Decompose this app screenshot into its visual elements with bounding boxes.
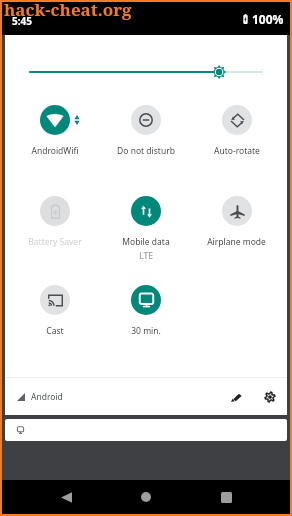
button[interactable]: Do not disturb <box>100 105 191 157</box>
button[interactable]: Recents <box>186 480 266 514</box>
staticText: Do not disturb <box>117 145 175 157</box>
staticText: Android <box>31 391 63 403</box>
button[interactable]: Home <box>106 480 186 514</box>
staticText: AndroidWifi <box>31 145 79 157</box>
button[interactable]: Back <box>26 480 106 514</box>
staticText: 30 min. <box>131 325 161 337</box>
staticText: 100% <box>252 11 284 27</box>
button[interactable]: Battery Saver <box>9 196 100 248</box>
button[interactable]: Edit <box>222 383 250 411</box>
button[interactable]: AndroidWifi <box>9 105 100 157</box>
staticText: Battery Saver <box>28 236 82 248</box>
button[interactable]: Auto-rotate <box>191 105 282 157</box>
staticText: Auto-rotate <box>214 145 260 157</box>
staticText: Cast <box>46 325 64 337</box>
button[interactable]: Cast <box>9 285 100 337</box>
staticText: LTE <box>139 250 153 262</box>
button[interactable]: Settings <box>256 383 284 411</box>
button[interactable]: Mobile data <box>100 196 191 262</box>
staticText: 5:45 <box>12 14 32 28</box>
button[interactable]: 30 min. <box>100 285 191 337</box>
staticText: Mobile data <box>122 236 170 248</box>
staticText: Airplane mode <box>207 236 266 248</box>
staticText: hack-cheat.org <box>4 0 132 21</box>
button[interactable] <box>5 419 287 441</box>
button[interactable]: Airplane mode <box>191 196 282 248</box>
